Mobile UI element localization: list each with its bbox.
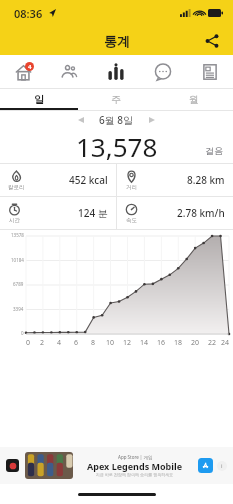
staticText: Apex Legends Mobile bbox=[87, 460, 183, 472]
staticText: 걸음 bbox=[205, 145, 223, 156]
staticText: 124 분 bbox=[78, 206, 108, 220]
button[interactable]: App Store | 게임 bbox=[0, 447, 233, 484]
staticText: 08:36 bbox=[14, 6, 43, 21]
button[interactable]: Previous day bbox=[73, 112, 89, 128]
staticText: 칼로리 bbox=[8, 184, 25, 191]
staticText: 6789 bbox=[13, 281, 24, 287]
staticText: 22 bbox=[208, 338, 217, 348]
button[interactable]: Ad info bbox=[217, 461, 227, 471]
staticText: 16 bbox=[157, 338, 166, 348]
staticText: 8 bbox=[91, 338, 96, 348]
button[interactable]: Friends bbox=[46, 55, 92, 88]
staticText: 13,578 bbox=[76, 129, 158, 163]
staticText: 20 bbox=[191, 338, 200, 348]
staticText: 주 bbox=[111, 93, 121, 106]
staticText: 지금 바로 전장에 참여해 승리를 쟁취하세요 bbox=[96, 472, 174, 477]
staticText: 0 bbox=[21, 330, 24, 336]
button[interactable]: 월 bbox=[155, 89, 233, 110]
staticText: 6 bbox=[74, 338, 79, 348]
staticText: 4 bbox=[28, 63, 32, 71]
staticText: 24 bbox=[221, 338, 229, 348]
staticText: 속도 bbox=[126, 217, 137, 224]
staticText: 시간 bbox=[9, 217, 20, 224]
staticText: 10184 bbox=[11, 257, 24, 263]
staticText: 4 bbox=[57, 338, 62, 348]
button[interactable]: Home bbox=[0, 55, 46, 88]
button[interactable]: 주 bbox=[77, 89, 155, 110]
staticText: App Store | 게임 bbox=[118, 454, 153, 460]
staticText: 2 bbox=[40, 338, 45, 348]
button[interactable]: Next day bbox=[144, 112, 160, 128]
staticText: 월 bbox=[189, 93, 199, 106]
staticText: 12 bbox=[123, 338, 132, 348]
staticText: 13578 bbox=[11, 232, 24, 238]
staticText: i bbox=[221, 462, 223, 470]
staticText: 통계 bbox=[104, 33, 130, 49]
staticText: 6월 8일 bbox=[99, 113, 134, 127]
staticText: 2.78 km/h bbox=[177, 206, 225, 220]
staticText: 8.28 km bbox=[187, 173, 225, 187]
staticText: 0 bbox=[26, 338, 31, 348]
staticText: 거리 bbox=[126, 184, 137, 191]
staticText: 14 bbox=[140, 338, 149, 348]
button[interactable]: Share bbox=[199, 28, 225, 54]
button[interactable]: 칼로리 bbox=[0, 164, 116, 196]
button[interactable]: 거리 bbox=[117, 164, 233, 196]
button[interactable]: 일 bbox=[0, 89, 77, 110]
staticText: 일 bbox=[34, 93, 44, 106]
staticText: 452 kcal bbox=[69, 173, 108, 187]
button[interactable]: 시간 bbox=[0, 197, 116, 229]
staticText: 18 bbox=[174, 338, 183, 348]
button[interactable]: News bbox=[186, 55, 233, 88]
button[interactable]: 속도 bbox=[117, 197, 233, 229]
staticText: 10 bbox=[106, 338, 115, 348]
button[interactable]: Statistics bbox=[92, 55, 139, 88]
staticText: 3394 bbox=[13, 306, 24, 312]
button[interactable]: Chat bbox=[139, 55, 186, 88]
